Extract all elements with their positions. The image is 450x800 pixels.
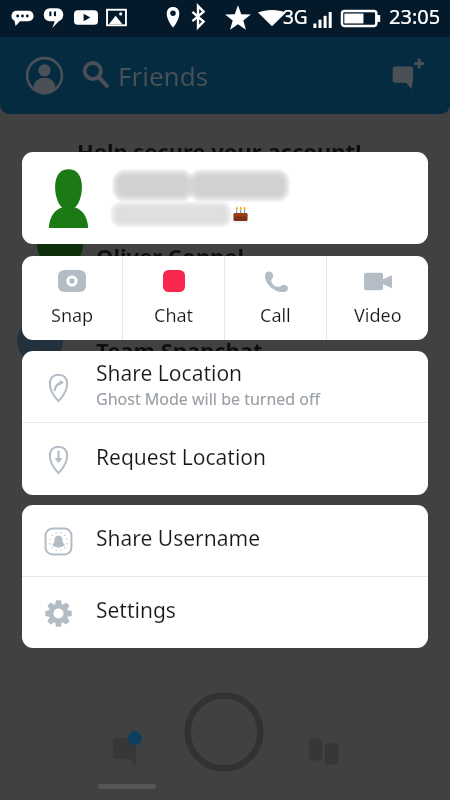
button[interactable]: Call <box>225 256 326 340</box>
staticText: Team Snapchat <box>96 335 263 365</box>
staticText: Oliver Connel <box>96 241 244 271</box>
other: Call <box>264 270 288 292</box>
button[interactable]: Profile <box>26 57 63 94</box>
staticText: Video <box>354 303 402 328</box>
button[interactable]: Snap <box>22 256 122 340</box>
staticText: Snap <box>51 303 94 328</box>
button[interactable]: Settings <box>22 577 428 648</box>
staticText: Request Location <box>96 443 266 472</box>
button[interactable]: Video <box>327 256 428 340</box>
button[interactable]: Request Location <box>22 423 428 495</box>
button[interactable]: Share Username <box>22 505 428 576</box>
button[interactable]: Share Location <box>22 351 428 422</box>
staticText: Help secure your account! <box>77 136 362 166</box>
button[interactable]: Chat <box>123 256 224 340</box>
button[interactable] <box>22 152 428 244</box>
staticText: Share Location <box>96 359 243 388</box>
staticText: Ghost Mode will be turned off <box>96 388 321 410</box>
button[interactable]: Chat <box>98 722 154 778</box>
button[interactable]: Stories <box>296 722 352 778</box>
staticText: Settings <box>96 596 176 625</box>
staticText: Chat <box>154 303 194 328</box>
other: Chat <box>163 270 185 292</box>
button[interactable]: Camera <box>184 692 264 772</box>
button[interactable]: New chat <box>392 57 426 91</box>
other: Snap <box>58 270 86 292</box>
staticText: Share Username <box>96 524 261 553</box>
staticText: Call <box>260 303 291 328</box>
staticText: Friends <box>118 58 209 93</box>
staticText: 23:05 <box>389 3 441 30</box>
staticText: 3G <box>283 4 308 30</box>
other: Video <box>364 271 392 292</box>
